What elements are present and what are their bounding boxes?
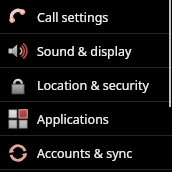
- staticText: Accounts & sync: [37, 145, 133, 162]
- button[interactable]: Call settings: [0, 0, 172, 34]
- button[interactable]: Location & security: [0, 68, 172, 102]
- staticText: Sound & display: [37, 43, 132, 60]
- button[interactable]: Applications: [0, 102, 172, 136]
- staticText: Applications: [37, 111, 109, 128]
- button[interactable]: Sound & display: [0, 34, 172, 68]
- staticText: Call settings: [37, 9, 109, 26]
- staticText: Location & security: [37, 77, 149, 94]
- button[interactable]: Accounts & sync: [0, 136, 172, 170]
